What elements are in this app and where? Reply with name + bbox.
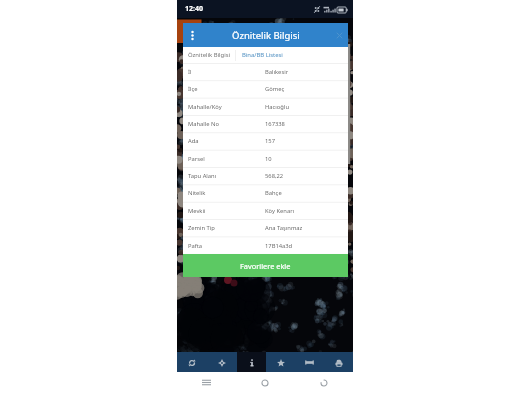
button[interactable]: Pafta — [183, 237, 348, 254]
button[interactable]: Info — [237, 352, 266, 373]
staticText: Bina/BB Listesi — [242, 51, 283, 59]
button[interactable]: More options — [183, 23, 201, 47]
staticText: İl — [188, 68, 265, 76]
button[interactable]: Ada — [183, 132, 348, 149]
staticText: 167338 — [265, 120, 285, 128]
button[interactable]: Bina/BB Listesi — [236, 47, 288, 63]
staticText: 12:40 — [185, 4, 203, 14]
staticText: Ana Taşınmaz — [265, 224, 303, 232]
button[interactable]: Öznitelik Bilgisi — [183, 47, 235, 63]
staticText: Parsel — [188, 155, 265, 163]
staticText: Öznitelik Bilgisi — [232, 29, 300, 42]
button[interactable]: İl — [183, 63, 348, 80]
button[interactable]: Back — [294, 372, 353, 393]
button[interactable]: Measure — [295, 352, 324, 373]
button[interactable]: Mevkii — [183, 202, 348, 219]
staticText: Gömeç — [265, 85, 285, 93]
staticText: Mahalle/Köy — [188, 103, 265, 111]
button[interactable]: Nitelik — [183, 184, 348, 201]
button[interactable]: Favorilere ekle — [183, 254, 348, 277]
button[interactable]: Home — [235, 372, 294, 393]
staticText: Balıkesir — [265, 68, 289, 76]
staticText: Favorilere ekle — [240, 261, 291, 271]
button[interactable]: My location — [207, 352, 237, 373]
button[interactable]: Print — [324, 352, 353, 373]
staticText: İlçe — [188, 85, 265, 93]
staticText: Ada — [188, 137, 265, 145]
staticText: Mahalle No — [188, 120, 265, 128]
button[interactable]: Parsel — [183, 150, 348, 167]
button[interactable]: Refresh — [177, 352, 207, 373]
button[interactable]: Mahalle/Köy — [183, 98, 348, 115]
staticText: Hacıoğlu — [265, 103, 289, 111]
staticText: Öznitelik Bilgisi — [188, 51, 231, 59]
button[interactable]: Mahalle No — [183, 115, 348, 132]
staticText: Mevkii — [188, 207, 265, 215]
staticText: Pafta — [188, 242, 265, 250]
button[interactable]: İlçe — [183, 80, 348, 97]
staticText: Bahçe — [265, 189, 282, 197]
button[interactable]: Tapu Alanı — [183, 167, 348, 184]
staticText: Nitelik — [188, 189, 265, 197]
button[interactable]: Close — [330, 23, 348, 47]
staticText: Köy Kenarı — [265, 207, 295, 215]
staticText: Zemin Tip — [188, 224, 265, 232]
button[interactable]: Recent apps — [177, 372, 235, 393]
button[interactable]: Zemin Tip — [183, 219, 348, 236]
staticText: 17B14a3d — [265, 242, 293, 250]
staticText: 157 — [265, 137, 275, 145]
button[interactable]: Favorites — [266, 352, 295, 373]
staticText: 10 — [265, 155, 272, 163]
staticText: 568,22 — [265, 172, 284, 180]
staticText: Tapu Alanı — [188, 172, 265, 180]
